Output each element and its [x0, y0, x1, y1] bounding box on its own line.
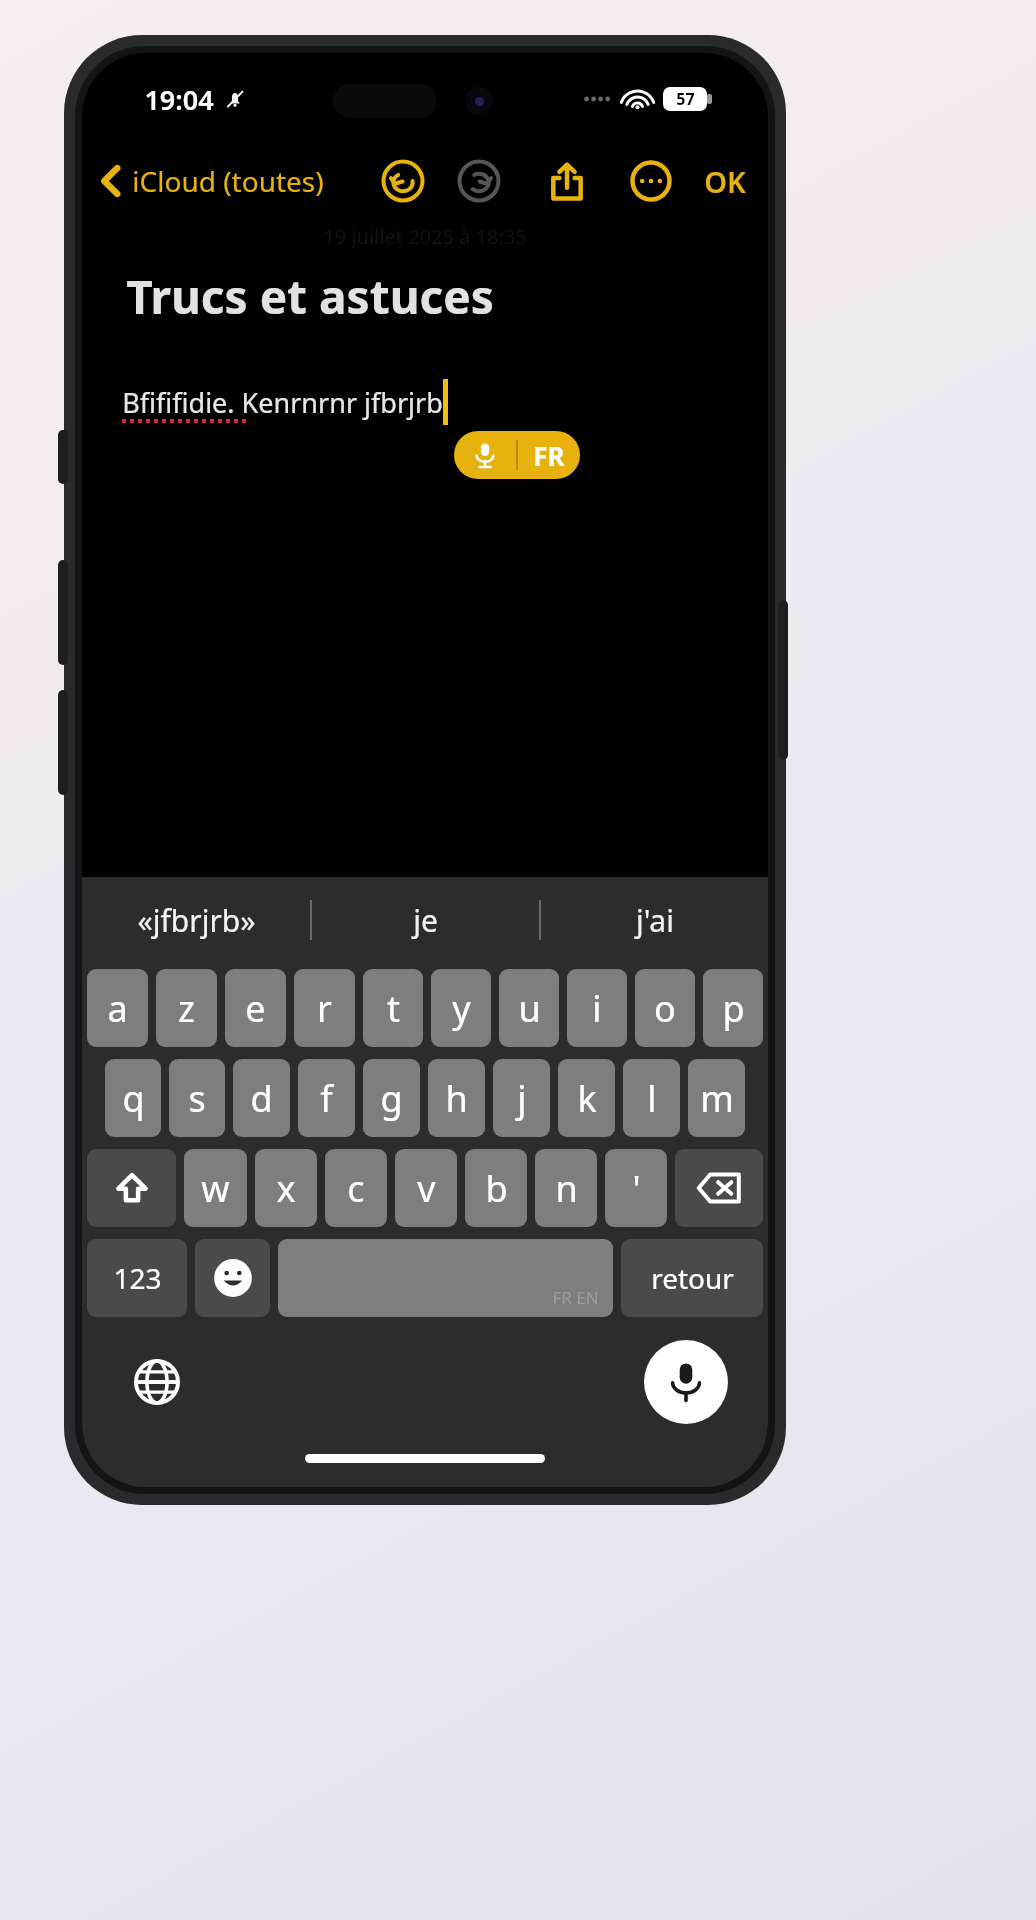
- button[interactable]: i: [567, 969, 627, 1047]
- staticText: k: [577, 1074, 597, 1123]
- button[interactable]: o: [635, 969, 695, 1047]
- button[interactable]: q: [105, 1059, 161, 1137]
- staticText: FR EN: [552, 1286, 599, 1309]
- button[interactable]: «jfbrjrb»: [82, 877, 310, 963]
- staticText: s: [188, 1074, 206, 1123]
- button[interactable]: b: [465, 1149, 527, 1227]
- staticText: f: [320, 1074, 333, 1123]
- button[interactable]: Emoji: [195, 1239, 270, 1317]
- button[interactable]: l: [623, 1059, 680, 1137]
- button[interactable]: d: [233, 1059, 290, 1137]
- button[interactable]: Espace: [278, 1239, 613, 1317]
- button[interactable]: j'ai: [541, 877, 768, 963]
- button[interactable]: Dictée: [644, 1340, 728, 1424]
- staticText: retour: [651, 1259, 734, 1297]
- staticText: je: [413, 900, 438, 941]
- staticText: p: [722, 984, 745, 1033]
- button[interactable]: r: [294, 969, 355, 1047]
- staticText: iCloud (toutes): [132, 162, 324, 200]
- button[interactable]: f: [298, 1059, 355, 1137]
- staticText: l: [647, 1074, 657, 1123]
- staticText: w: [201, 1164, 230, 1213]
- button[interactable]: OK: [700, 162, 750, 201]
- staticText: Trucs et astuces: [126, 265, 494, 328]
- staticText: z: [178, 984, 195, 1033]
- staticText: d: [250, 1074, 273, 1123]
- button[interactable]: je: [312, 877, 539, 963]
- button[interactable]: ': [605, 1149, 667, 1227]
- button[interactable]: x: [255, 1149, 317, 1227]
- staticText: «jfbrjrb»: [137, 900, 256, 941]
- staticText: OK: [704, 162, 746, 201]
- button[interactable]: 123: [87, 1239, 187, 1317]
- staticText: 57: [676, 88, 695, 110]
- staticText: r: [317, 984, 332, 1033]
- staticText: h: [445, 1074, 468, 1123]
- staticText: t: [387, 984, 400, 1033]
- button[interactable]: w: [184, 1149, 247, 1227]
- button[interactable]: c: [325, 1149, 387, 1227]
- button[interactable]: 19 juillet 2025 à 18:35: [82, 217, 768, 877]
- staticText: j'ai: [636, 900, 674, 941]
- staticText: 19:04: [144, 81, 214, 118]
- staticText: 19 juillet 2025 à 18:35: [323, 223, 527, 250]
- button[interactable]: m: [688, 1059, 745, 1137]
- button[interactable]: g: [363, 1059, 420, 1137]
- button[interactable]: n: [535, 1149, 597, 1227]
- button[interactable]: z: [156, 969, 217, 1047]
- staticText: y: [452, 984, 471, 1033]
- button[interactable]: Changer de clavier: [126, 1351, 188, 1413]
- staticText: i: [592, 984, 602, 1033]
- button[interactable]: retour: [621, 1239, 763, 1317]
- button[interactable]: t: [363, 969, 423, 1047]
- button[interactable]: Partager: [540, 154, 594, 208]
- button[interactable]: v: [395, 1149, 457, 1227]
- button[interactable]: iCloud (toutes): [98, 162, 324, 200]
- button[interactable]: Annuler: [376, 154, 430, 208]
- staticText: g: [380, 1074, 403, 1123]
- staticText: j: [517, 1074, 527, 1123]
- button[interactable]: e: [225, 969, 286, 1047]
- staticText: b: [485, 1164, 508, 1213]
- button[interactable]: a: [87, 969, 148, 1047]
- staticText: n: [555, 1164, 578, 1213]
- button[interactable]: Majuscule: [87, 1149, 176, 1227]
- button[interactable]: Rétablir: [452, 154, 506, 208]
- button[interactable]: y: [431, 969, 491, 1047]
- button[interactable]: Plus d'options: [624, 154, 678, 208]
- staticText: c: [347, 1164, 365, 1213]
- staticText: u: [518, 984, 541, 1033]
- staticText: v: [417, 1164, 436, 1213]
- staticText: Bfififidie. Kenrnrnr jfbrjrb: [122, 384, 443, 421]
- button[interactable]: Dictée FR: [454, 431, 580, 479]
- button[interactable]: s: [169, 1059, 225, 1137]
- staticText: FR: [533, 438, 565, 473]
- staticText: a: [107, 984, 128, 1033]
- button[interactable]: p: [703, 969, 763, 1047]
- staticText: 123: [113, 1259, 162, 1297]
- staticText: m: [700, 1074, 734, 1123]
- staticText: q: [122, 1074, 145, 1123]
- button[interactable]: Supprimer: [675, 1149, 763, 1227]
- button[interactable]: u: [499, 969, 559, 1047]
- staticText: e: [245, 984, 266, 1033]
- staticText: x: [276, 1164, 296, 1213]
- staticText: ': [632, 1164, 641, 1213]
- button[interactable]: j: [493, 1059, 550, 1137]
- button[interactable]: k: [558, 1059, 615, 1137]
- staticText: o: [654, 984, 676, 1033]
- button[interactable]: h: [428, 1059, 485, 1137]
